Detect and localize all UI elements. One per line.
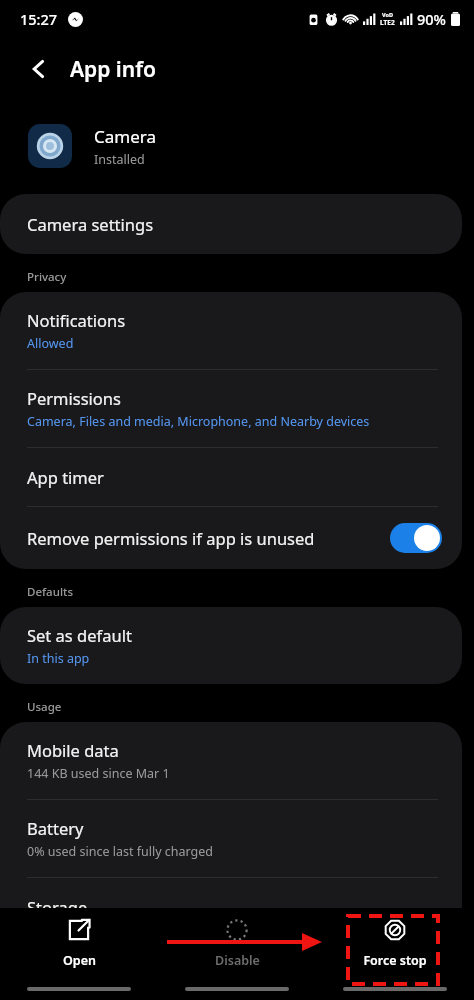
other: Disable bbox=[225, 918, 249, 942]
staticText: 15:27 bbox=[20, 9, 58, 29]
staticText: Storage bbox=[27, 896, 88, 918]
staticText: Mobile data bbox=[27, 739, 119, 761]
staticText: Force stop bbox=[363, 952, 427, 969]
staticText: 0% used since last fully charged bbox=[27, 843, 214, 860]
button[interactable]: Notifications bbox=[0, 292, 462, 369]
staticText: App timer bbox=[27, 466, 104, 488]
button[interactable]: App timer bbox=[0, 448, 462, 506]
staticText: Usage bbox=[27, 699, 62, 715]
other: Force stop bbox=[383, 918, 407, 942]
other: Open bbox=[67, 918, 91, 942]
staticText: Permissions bbox=[27, 387, 121, 409]
button[interactable]: Permissions bbox=[0, 370, 462, 447]
staticText: Battery bbox=[27, 817, 84, 839]
button[interactable]: Set as default bbox=[0, 607, 462, 684]
button[interactable]: Storage bbox=[0, 878, 462, 936]
button[interactable]: Camera settings bbox=[0, 194, 462, 254]
button[interactable]: Remove permissions if app is unused bbox=[0, 507, 462, 569]
staticText: Disable bbox=[215, 952, 260, 969]
staticText: App info bbox=[70, 55, 156, 84]
staticText: Installed bbox=[94, 151, 145, 168]
staticText: Defaults bbox=[27, 584, 73, 600]
button[interactable]: Battery bbox=[0, 800, 462, 877]
button[interactable]: Force stop bbox=[316, 910, 474, 977]
staticText: Privacy bbox=[27, 269, 67, 285]
staticText: Camera settings bbox=[27, 213, 154, 235]
button[interactable]: Disable bbox=[158, 910, 316, 977]
staticText: Remove permissions if app is unused bbox=[27, 527, 315, 549]
button[interactable]: Remove permissions toggle bbox=[390, 523, 442, 553]
staticText: Allowed bbox=[27, 335, 74, 352]
button[interactable]: Open bbox=[0, 910, 158, 977]
button[interactable]: Mobile data bbox=[0, 722, 462, 799]
staticText: In this app bbox=[27, 650, 90, 667]
staticText: Notifications bbox=[27, 309, 126, 331]
staticText: Camera bbox=[94, 125, 156, 148]
staticText: LTE2 bbox=[380, 18, 395, 27]
staticText: 90% bbox=[417, 9, 446, 29]
button[interactable]: Back bbox=[18, 48, 60, 90]
staticText: Open bbox=[63, 952, 96, 969]
staticText: Camera, Files and media, Microphone, and… bbox=[27, 413, 370, 430]
staticText: 144 KB used since Mar 1 bbox=[27, 765, 170, 782]
button[interactable]: Camera bbox=[28, 124, 474, 168]
staticText: Set as default bbox=[27, 624, 132, 646]
staticText: VoD bbox=[382, 11, 393, 18]
